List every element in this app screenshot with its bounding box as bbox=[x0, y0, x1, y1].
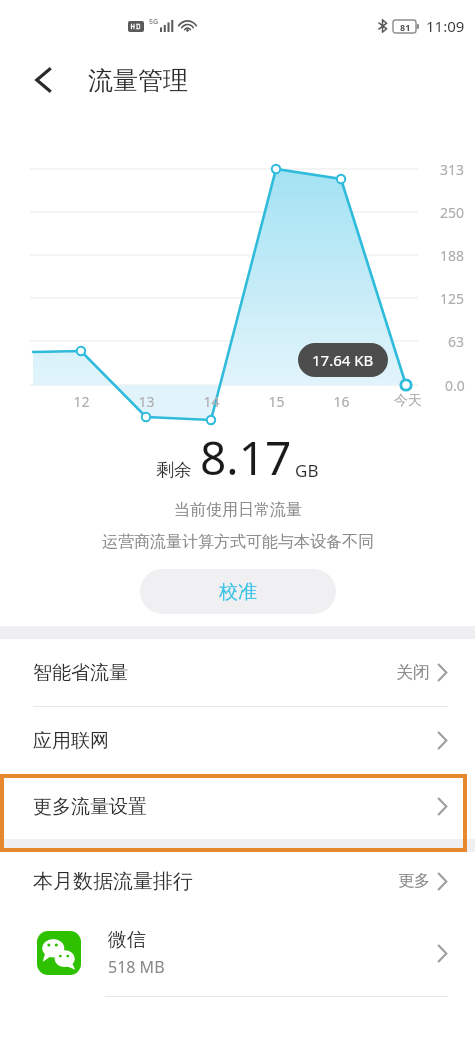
staticText: 12 bbox=[73, 392, 90, 411]
staticText: 188 bbox=[440, 246, 465, 265]
button[interactable]: 校准 bbox=[140, 569, 336, 614]
staticText: 更多 bbox=[398, 871, 430, 891]
staticText: 81 bbox=[400, 21, 411, 33]
staticText: GB bbox=[295, 459, 319, 482]
staticText: 5G bbox=[149, 17, 159, 27]
staticText: 当前使用日常流量 bbox=[174, 500, 302, 520]
staticText: 250 bbox=[440, 203, 465, 222]
staticText: 16 bbox=[333, 392, 350, 411]
staticText: 关闭 bbox=[396, 662, 430, 683]
staticText: 微信 bbox=[108, 928, 146, 952]
staticText: 518 MB bbox=[108, 956, 165, 978]
staticText: 剩余 bbox=[156, 459, 192, 482]
staticText: 63 bbox=[448, 332, 465, 351]
button[interactable]: Back bbox=[30, 61, 68, 99]
staticText: 今天 bbox=[394, 392, 422, 410]
staticText: 流量管理 bbox=[88, 65, 188, 96]
staticText: 本月数据流量排行 bbox=[33, 869, 193, 894]
button[interactable]: 更多流量设置 bbox=[0, 774, 475, 839]
staticText: 智能省流量 bbox=[33, 661, 128, 685]
staticText: 313 bbox=[440, 160, 465, 179]
staticText: 应用联网 bbox=[33, 729, 109, 753]
staticText: 125 bbox=[440, 289, 465, 308]
staticText: 13 bbox=[138, 392, 155, 411]
staticText: 更多流量设置 bbox=[33, 795, 147, 819]
staticText: 运营商流量计算方式可能与本设备不同 bbox=[102, 532, 374, 552]
staticText: 8.17 bbox=[200, 426, 292, 489]
button[interactable]: 应用联网 bbox=[0, 707, 475, 774]
button[interactable]: 智能省流量 bbox=[0, 639, 475, 706]
staticText: 17.64 KB bbox=[312, 350, 374, 370]
staticText: 11:09 bbox=[426, 16, 465, 36]
button[interactable]: 微信 bbox=[0, 910, 475, 996]
staticText: 14 bbox=[203, 392, 220, 411]
staticText: 15 bbox=[268, 392, 285, 411]
staticText: 校准 bbox=[219, 580, 257, 604]
button[interactable]: 本月数据流量排行 bbox=[0, 852, 475, 910]
staticText: 0.0 bbox=[445, 376, 465, 395]
